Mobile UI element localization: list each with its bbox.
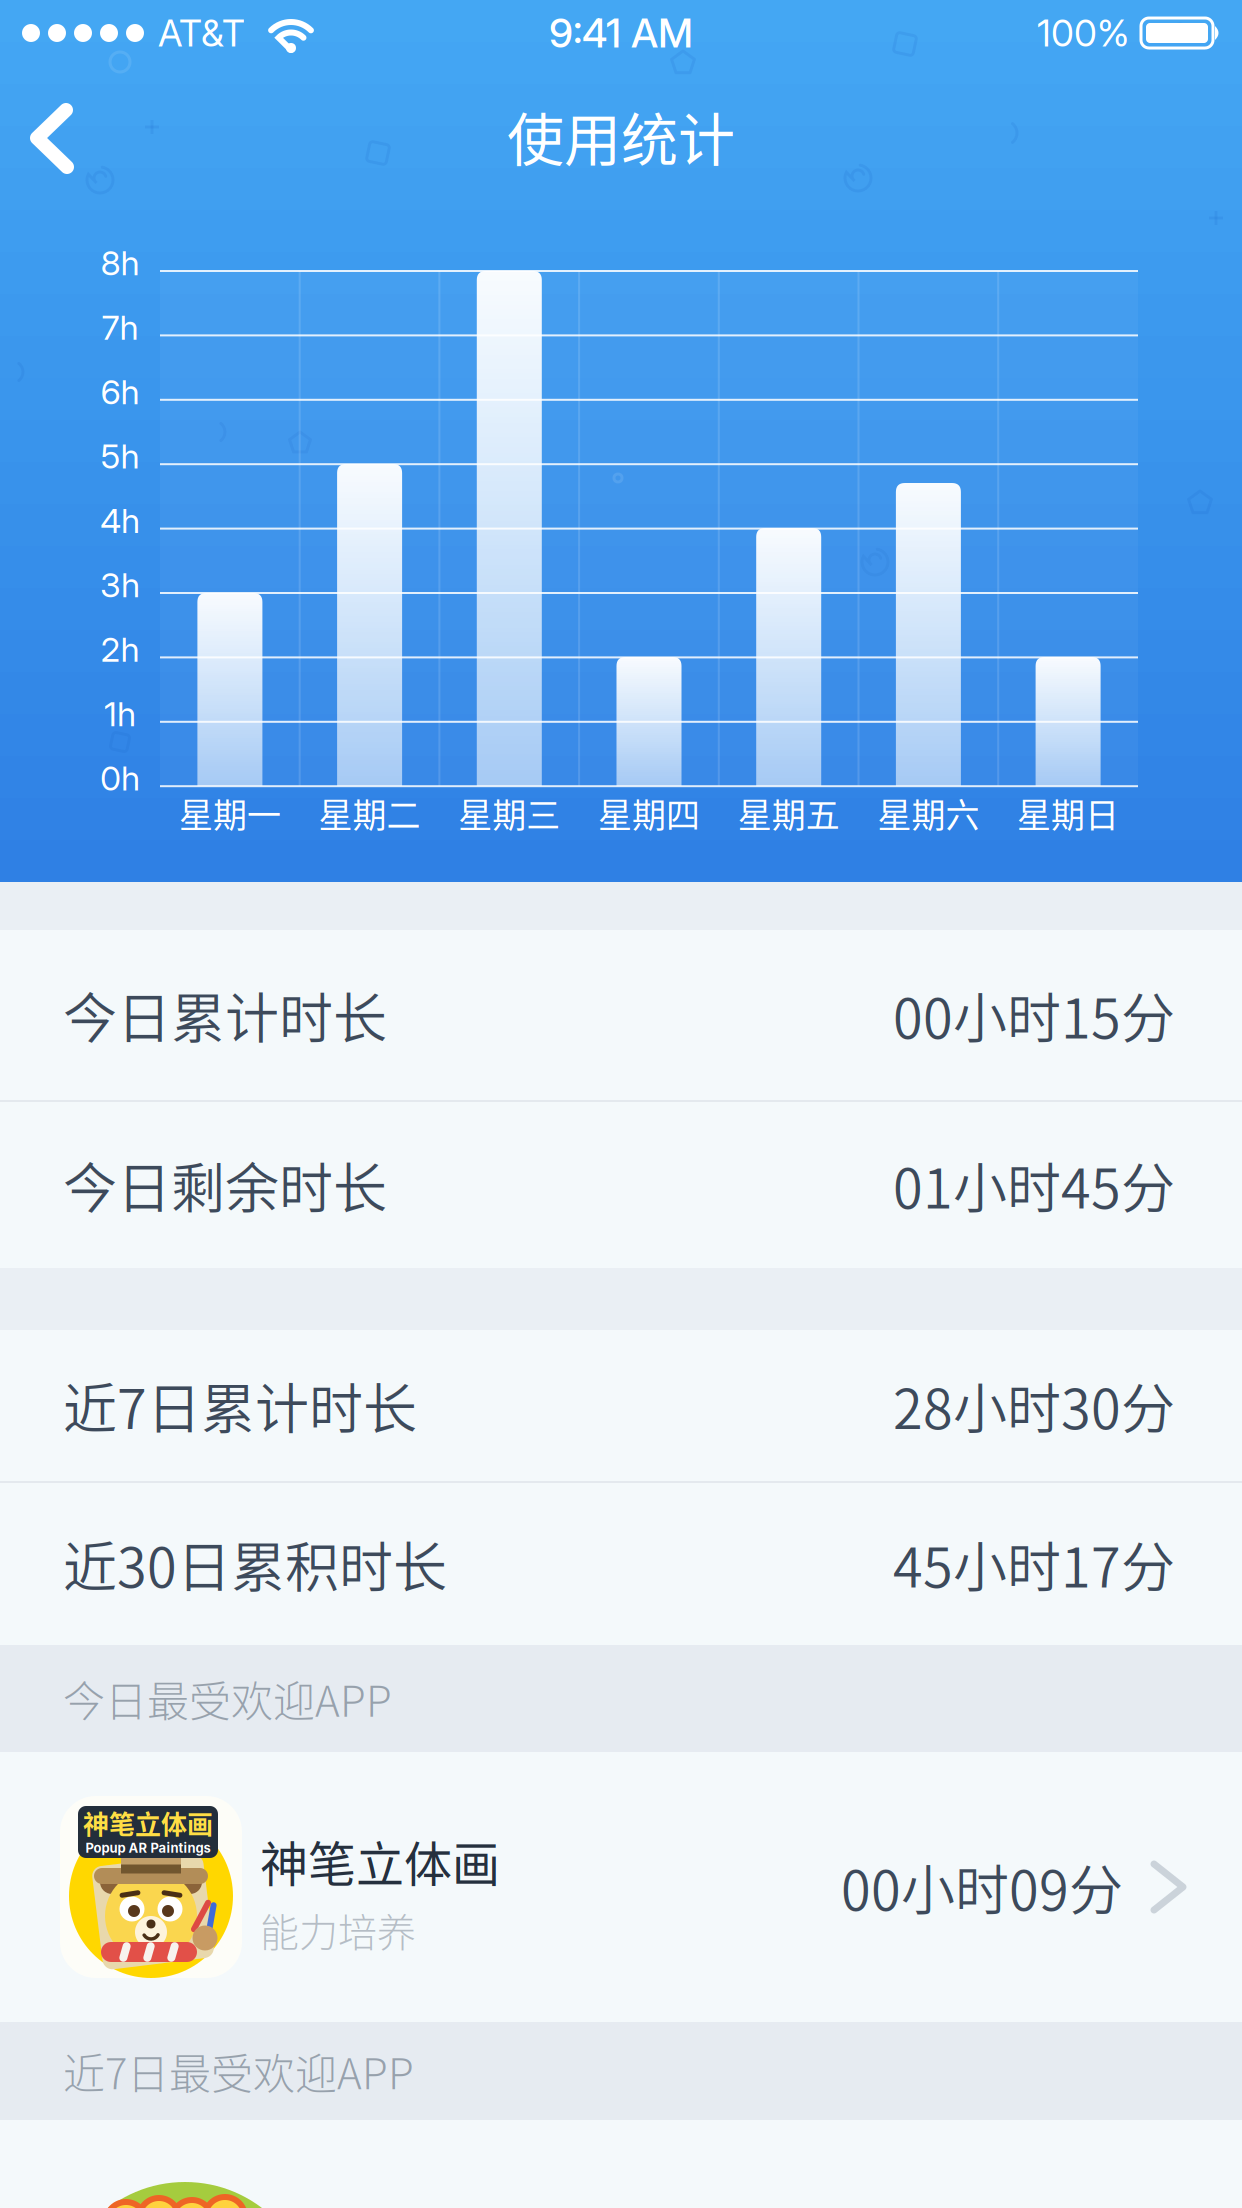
button[interactable] xyxy=(0,2120,1242,2208)
staticText: 45小时17分 xyxy=(893,1525,1175,1603)
staticText: Popup AR Paintings xyxy=(85,1840,210,1856)
staticText: 2h xyxy=(100,629,139,670)
staticText: 00小时09分 xyxy=(841,1848,1123,1926)
staticText: 4h xyxy=(100,500,140,541)
staticText: 01小时45分 xyxy=(893,1146,1175,1224)
staticText: 星期日 xyxy=(1017,788,1119,838)
staticText: 7h xyxy=(101,307,138,348)
staticText: 神笔立体画 xyxy=(83,1804,213,1842)
button[interactable]: Back xyxy=(29,106,75,172)
staticText: 近7日累计时长 xyxy=(63,1366,417,1445)
staticText: AT&T xyxy=(158,11,245,55)
staticText: 星期五 xyxy=(738,788,840,838)
staticText: 使用统计 xyxy=(507,95,735,177)
staticText: 能力培养 xyxy=(260,1901,416,1958)
staticText: 0h xyxy=(100,758,140,799)
staticText: 星期一 xyxy=(179,788,281,838)
staticText: 今日最受欢迎APP xyxy=(63,1668,392,1729)
staticText: 星期二 xyxy=(319,788,421,838)
staticText: 星期四 xyxy=(598,788,700,838)
staticText: 星期六 xyxy=(877,788,979,838)
button[interactable]: 神笔立体画 xyxy=(0,1752,1242,2022)
staticText: 3h xyxy=(100,564,140,605)
staticText: 今日累计时长 xyxy=(63,976,387,1054)
staticText: 5h xyxy=(100,436,139,477)
staticText: 00小时15分 xyxy=(893,976,1175,1054)
staticText: 神笔立体画 xyxy=(260,1826,500,1895)
staticText: 星期三 xyxy=(458,788,560,838)
staticText: 1h xyxy=(104,693,136,734)
staticText: 近7日最受欢迎APP xyxy=(63,2041,414,2101)
staticText: 8h xyxy=(100,242,139,283)
staticText: 近30日累积时长 xyxy=(63,1525,447,1603)
staticText: 今日剩余时长 xyxy=(63,1146,387,1224)
staticText: 100% xyxy=(1037,11,1129,55)
staticText: 6h xyxy=(100,371,139,412)
staticText: 9:41 AM xyxy=(549,9,693,57)
staticText: 28小时30分 xyxy=(893,1366,1175,1445)
